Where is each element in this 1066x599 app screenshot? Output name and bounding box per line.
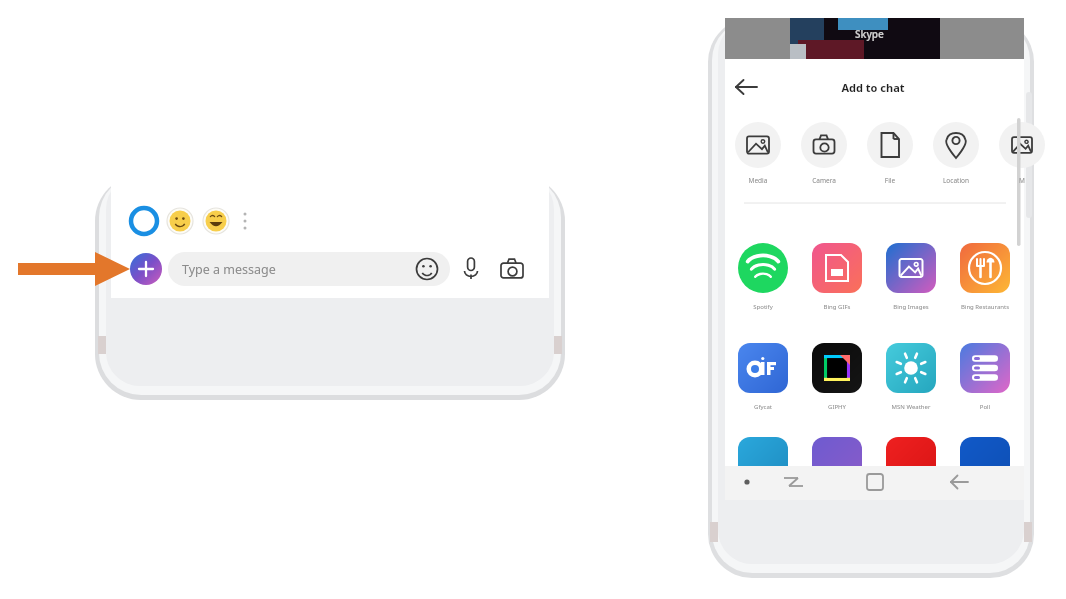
button[interactable]: GIPHY bbox=[812, 343, 862, 393]
button[interactable]: Back bbox=[728, 71, 762, 105]
button[interactable]: Emoji bbox=[412, 253, 444, 285]
staticText: MSN Weather bbox=[874, 403, 948, 411]
button[interactable]: MSN Weather bbox=[886, 343, 936, 393]
button[interactable]: Spotify bbox=[738, 243, 788, 293]
button[interactable]: Bing Images bbox=[886, 243, 936, 293]
button[interactable]: Menu bbox=[727, 468, 767, 496]
button[interactable]: Bing Restaurants bbox=[960, 243, 1010, 293]
staticText: Type a message bbox=[182, 261, 276, 278]
button[interactable]: Gfycat bbox=[738, 343, 788, 393]
staticText: Bing Restaurants bbox=[948, 303, 1022, 311]
staticText: Bing GIFs bbox=[800, 303, 874, 311]
button[interactable]: Poll bbox=[960, 343, 1010, 393]
button[interactable]: Camera bbox=[497, 253, 529, 285]
staticText: Gfycat bbox=[726, 403, 800, 411]
button[interactable]: Voice message bbox=[456, 253, 488, 285]
staticText: Skype bbox=[855, 27, 884, 41]
staticText: Location bbox=[928, 176, 984, 185]
staticText: M bbox=[994, 176, 1050, 185]
staticText: Poll bbox=[948, 403, 1022, 411]
button[interactable]: File bbox=[867, 122, 913, 168]
button[interactable]: Recents bbox=[773, 468, 813, 496]
staticText: Camera bbox=[796, 176, 852, 185]
button[interactable]: Camera bbox=[801, 122, 847, 168]
button[interactable]: M bbox=[999, 122, 1045, 168]
button[interactable]: Add to chat bbox=[130, 253, 162, 285]
button[interactable]: Media bbox=[735, 122, 781, 168]
staticText: Add to chat bbox=[818, 80, 928, 95]
button[interactable]: Location bbox=[933, 122, 979, 168]
staticText: File bbox=[862, 176, 918, 185]
staticText: Spotify bbox=[726, 303, 800, 311]
button[interactable]: Home bbox=[855, 468, 895, 496]
staticText: Media bbox=[730, 176, 786, 185]
button[interactable] bbox=[168, 252, 450, 286]
button[interactable]: Navigate back bbox=[939, 468, 979, 496]
button[interactable]: Bing GIFs bbox=[812, 243, 862, 293]
staticText: GIPHY bbox=[800, 403, 874, 411]
staticText: Bing Images bbox=[874, 303, 948, 311]
